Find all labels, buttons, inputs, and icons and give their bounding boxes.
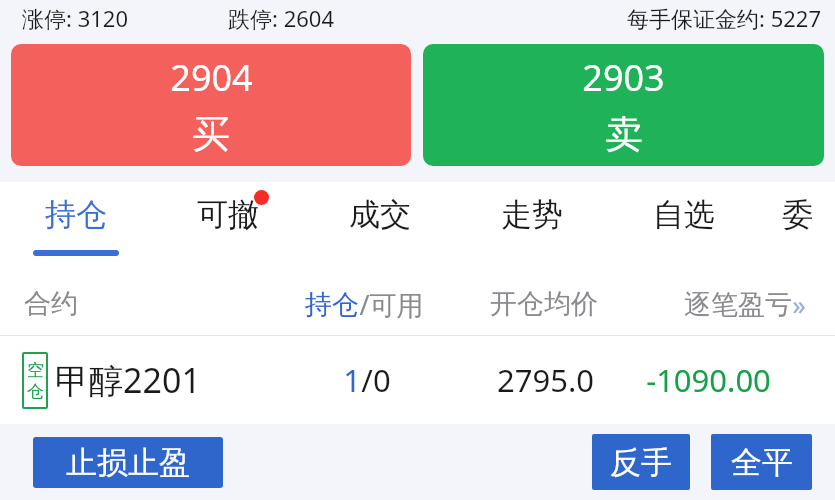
staticText: 1 bbox=[343, 359, 361, 401]
button[interactable]: 2903 bbox=[423, 44, 824, 166]
button[interactable]: 自选 bbox=[608, 182, 760, 272]
staticText: 止损止盈 bbox=[66, 443, 190, 482]
staticText: 开仓均价 bbox=[490, 287, 598, 321]
staticText: 逐笔盈亏 bbox=[684, 288, 792, 322]
button[interactable]: 空 bbox=[0, 336, 835, 424]
staticText: 每手保证金约: 5227 bbox=[627, 3, 821, 33]
button[interactable]: 全平 bbox=[711, 434, 812, 490]
button[interactable]: 反手 bbox=[592, 434, 690, 490]
button[interactable]: 成交 bbox=[304, 182, 456, 272]
staticText: 2904 bbox=[170, 53, 253, 102]
staticText: -1090.00 bbox=[646, 359, 771, 401]
button[interactable]: 可撤 bbox=[152, 182, 304, 272]
button[interactable]: 委 bbox=[760, 182, 835, 272]
staticText: 成交 bbox=[349, 195, 411, 234]
staticText: 合约 bbox=[24, 287, 78, 321]
staticText: 卖 bbox=[605, 110, 643, 158]
staticText: 甲醇2201 bbox=[55, 357, 201, 403]
staticText: 可撤 bbox=[197, 195, 259, 234]
staticText: » bbox=[792, 286, 806, 323]
staticText: 仓 bbox=[27, 381, 44, 402]
staticText: 持仓 bbox=[45, 195, 107, 234]
staticText: /可用 bbox=[359, 286, 424, 323]
staticText: 2795.0 bbox=[497, 359, 594, 401]
button[interactable]: 走势 bbox=[456, 182, 608, 272]
staticText: /0 bbox=[361, 359, 391, 401]
staticText: 反手 bbox=[610, 443, 672, 482]
button[interactable]: 持仓 bbox=[0, 182, 152, 272]
staticText: 走势 bbox=[501, 195, 563, 234]
staticText: 委 bbox=[782, 195, 813, 234]
staticText: 空 bbox=[27, 360, 44, 381]
staticText: 买 bbox=[192, 110, 230, 158]
button[interactable]: 止损止盈 bbox=[33, 437, 223, 488]
staticText: 跌停: 2604 bbox=[228, 3, 334, 33]
staticText: 涨停: 3120 bbox=[22, 3, 128, 33]
staticText: 2903 bbox=[582, 53, 665, 102]
staticText: 全平 bbox=[731, 443, 793, 482]
button[interactable]: 2904 bbox=[11, 44, 411, 166]
staticText: 自选 bbox=[653, 195, 715, 234]
staticText: 持仓 bbox=[305, 288, 359, 322]
